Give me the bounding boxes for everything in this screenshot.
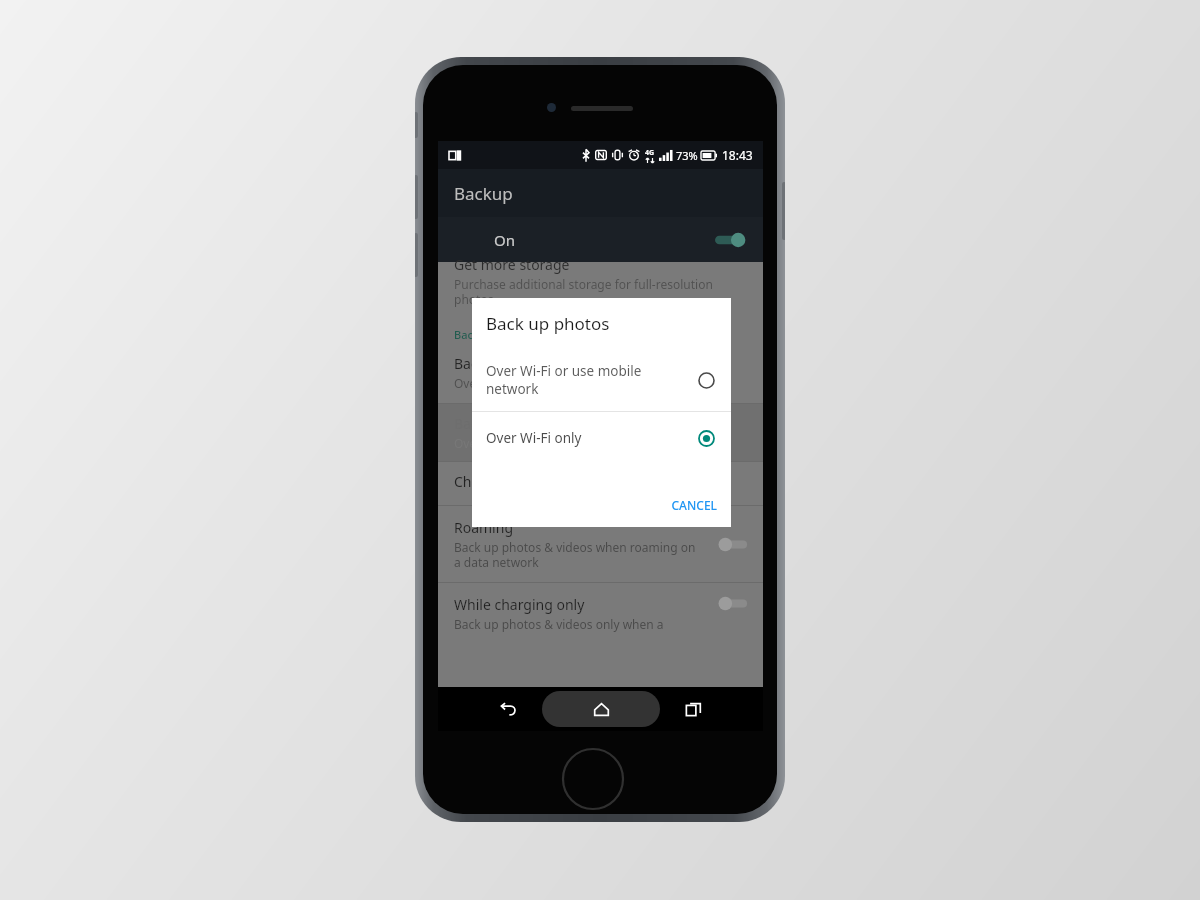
staticText: Backup <box>454 182 513 205</box>
button[interactable]: Roaming <box>438 506 763 582</box>
staticText: Back up photos & videos only when a <box>454 616 664 632</box>
staticText: Purchase additional storage for full-res… <box>454 276 713 307</box>
button[interactable]: Get more storage <box>438 262 763 313</box>
staticText: On <box>494 230 515 250</box>
button[interactable]: CANCEL <box>472 497 731 527</box>
staticText: Over Wi-Fi or use mobile network <box>486 362 698 398</box>
staticText: Back up photos <box>486 312 610 335</box>
staticText: Over Wi-Fi only <box>454 435 539 451</box>
staticText: Back up photos <box>454 354 556 373</box>
staticText: Over Wi-Fi only <box>486 429 698 447</box>
button[interactable]: Over Wi-Fi only <box>472 412 731 464</box>
button[interactable]: Over Wi-Fi or use mobile network <box>472 349 731 411</box>
staticText: 4G <box>645 148 655 158</box>
staticText: Over Wi-Fi only <box>454 375 539 391</box>
button[interactable]: Back up photos <box>438 354 763 391</box>
staticText: Roaming <box>454 518 513 537</box>
staticText: Back up photos & videos when roaming on … <box>454 539 696 570</box>
staticText: Charging and roaming <box>454 472 603 491</box>
button[interactable]: Recent apps <box>671 687 715 731</box>
staticText: Back up device folders <box>454 327 572 342</box>
staticText: Back up videos <box>454 414 553 433</box>
staticText: 18:43 <box>722 147 753 163</box>
staticText: Get more storage <box>454 255 570 274</box>
button[interactable]: Back up videos <box>438 404 763 461</box>
staticText: While charging only <box>454 595 585 614</box>
button[interactable]: While charging only <box>438 583 763 632</box>
staticText: 73% <box>676 148 698 163</box>
button[interactable]: On <box>438 217 763 262</box>
staticText: CANCEL <box>671 497 717 513</box>
button[interactable]: Home <box>579 687 623 731</box>
button[interactable]: Back <box>486 687 530 731</box>
